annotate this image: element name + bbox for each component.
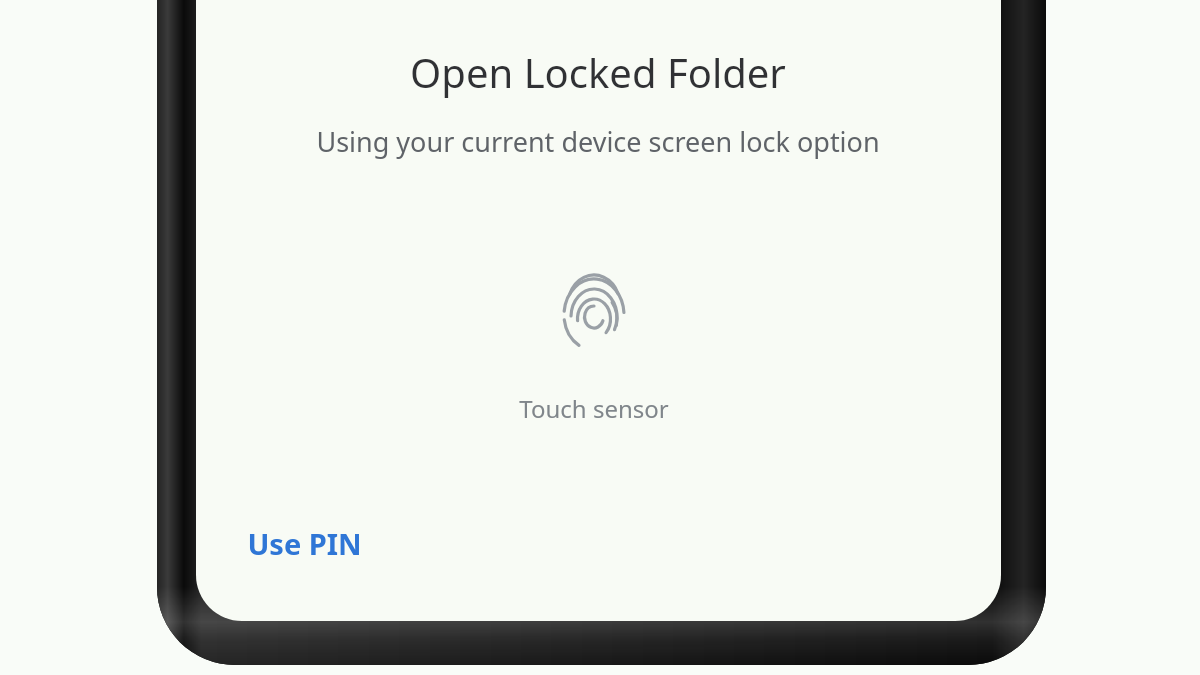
staticText: Using your current device screen lock op…	[248, 123, 948, 161]
button[interactable]: Use PIN	[228, 512, 380, 574]
button[interactable]: Fingerprint sensor	[544, 265, 644, 365]
staticText: Use PIN	[247, 524, 362, 563]
staticText: Touch sensor	[394, 392, 794, 426]
staticText: Open Locked Folder	[298, 45, 898, 99]
